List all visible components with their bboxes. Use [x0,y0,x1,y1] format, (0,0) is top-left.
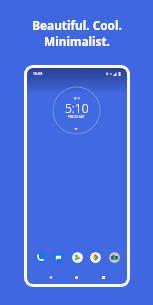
button[interactable]: Phone [35,252,46,263]
button[interactable]: Home [70,271,83,284]
button[interactable]: Photos [90,252,101,263]
staticText: 9° F [74,97,80,101]
button[interactable]: Back [44,271,57,284]
staticText: 10:08 [33,71,43,76]
staticText: Beautiful. Cool. [32,17,122,33]
button[interactable]: Camera [109,252,120,263]
staticText: FEB 26 SAT [68,115,85,119]
staticText: Minimalist. [44,33,110,49]
button[interactable]: Messages [53,252,64,263]
staticText: 5:10 [65,100,89,116]
button[interactable]: Recents [97,271,110,284]
button[interactable]: Play Store [72,252,83,263]
